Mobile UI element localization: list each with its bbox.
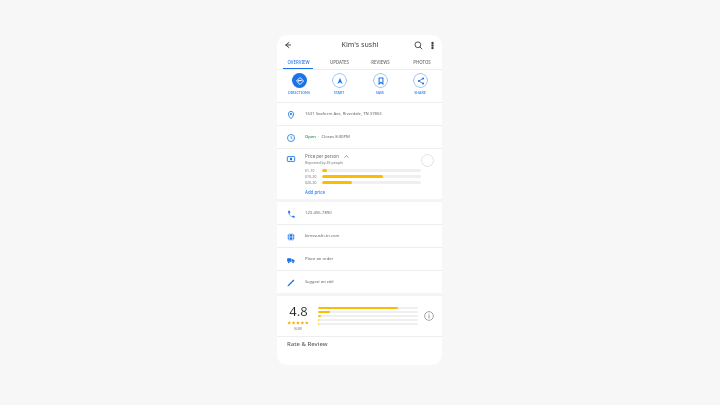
button[interactable]: DIRECTIONS xyxy=(281,73,317,95)
button[interactable]: REVIEWS xyxy=(360,55,401,69)
staticText: OVERVIEW xyxy=(287,59,310,65)
staticText: START xyxy=(321,90,357,95)
button[interactable]: UPDATES xyxy=(319,55,360,69)
staticText: $20–30 xyxy=(305,180,322,185)
button[interactable]: Suggest an edit xyxy=(277,271,442,293)
button[interactable]: Add price xyxy=(305,189,325,195)
staticText: 4.8 xyxy=(289,302,308,320)
staticText: SAVE xyxy=(362,90,398,95)
staticText: 1631 Seaform Ave, Riverdale, TN 37863 xyxy=(305,111,382,117)
staticText: UPDATES xyxy=(330,59,349,65)
staticText: 123-456-7890 xyxy=(305,210,332,216)
staticText: Open xyxy=(305,134,316,140)
staticText: Kim's sushi xyxy=(341,40,379,50)
staticText: · Closes 8:00PM xyxy=(316,134,350,140)
button[interactable]: kimssushi-tn.com xyxy=(277,225,442,247)
button[interactable]: Open xyxy=(277,126,442,148)
button[interactable]: 1631 Seaform Ave, Riverdale, TN 37863 xyxy=(277,103,442,125)
button[interactable]: Back xyxy=(281,38,295,52)
staticText: Reported by 45 people xyxy=(305,160,344,165)
staticText: Suggest an edit xyxy=(305,279,334,285)
button[interactable]: SHARE xyxy=(402,73,438,95)
button[interactable]: Place an order xyxy=(277,248,442,270)
staticText: Place an order xyxy=(305,256,334,262)
staticText: (638) xyxy=(294,326,302,331)
button[interactable]: SAVE xyxy=(362,73,398,95)
button[interactable]: Price per person xyxy=(277,149,442,199)
staticText: Price per person xyxy=(305,153,339,159)
button[interactable]: 123-456-7890 xyxy=(277,202,442,224)
staticText: Add price xyxy=(305,189,325,195)
button[interactable]: OVERVIEW xyxy=(277,55,319,69)
staticText: REVIEWS xyxy=(371,59,390,65)
staticText: DIRECTIONS xyxy=(281,90,317,95)
button[interactable]: More options xyxy=(425,38,439,52)
staticText: SHARE xyxy=(402,90,438,95)
button[interactable]: Rating info xyxy=(424,311,434,321)
button[interactable]: START xyxy=(321,73,357,95)
staticText: $10–20 xyxy=(305,174,322,179)
staticText: kimssushi-tn.com xyxy=(305,233,340,239)
staticText: $1–10 xyxy=(305,168,322,173)
staticText: Rate & Review xyxy=(287,340,328,348)
button[interactable]: Search xyxy=(411,38,425,52)
staticText: PHOTOS xyxy=(413,59,431,65)
button[interactable]: PHOTOS xyxy=(401,55,442,69)
button[interactable]: Rate price xyxy=(421,154,434,167)
